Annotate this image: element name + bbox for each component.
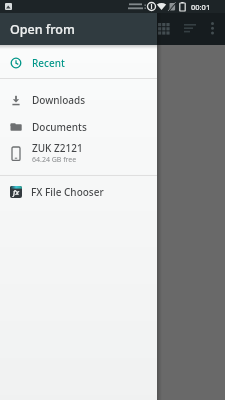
- button[interactable]: Documents: [0, 113, 157, 141]
- staticText: Open from: [10, 21, 75, 38]
- button[interactable]: Recent: [0, 48, 157, 78]
- button[interactable]: ZUK Z2121: [0, 140, 157, 166]
- staticText: fx: [13, 188, 19, 197]
- staticText: Recent: [32, 56, 65, 70]
- button[interactable]: fx: [0, 178, 157, 205]
- staticText: FX File Chooser: [31, 185, 104, 199]
- staticText: 00:01: [191, 2, 211, 12]
- button[interactable]: Downloads: [0, 85, 157, 114]
- staticText: ZUK Z2121: [32, 141, 83, 155]
- staticText: Downloads: [32, 93, 86, 107]
- staticText: 64.24 GB free: [32, 155, 77, 165]
- staticText: Documents: [32, 120, 87, 134]
